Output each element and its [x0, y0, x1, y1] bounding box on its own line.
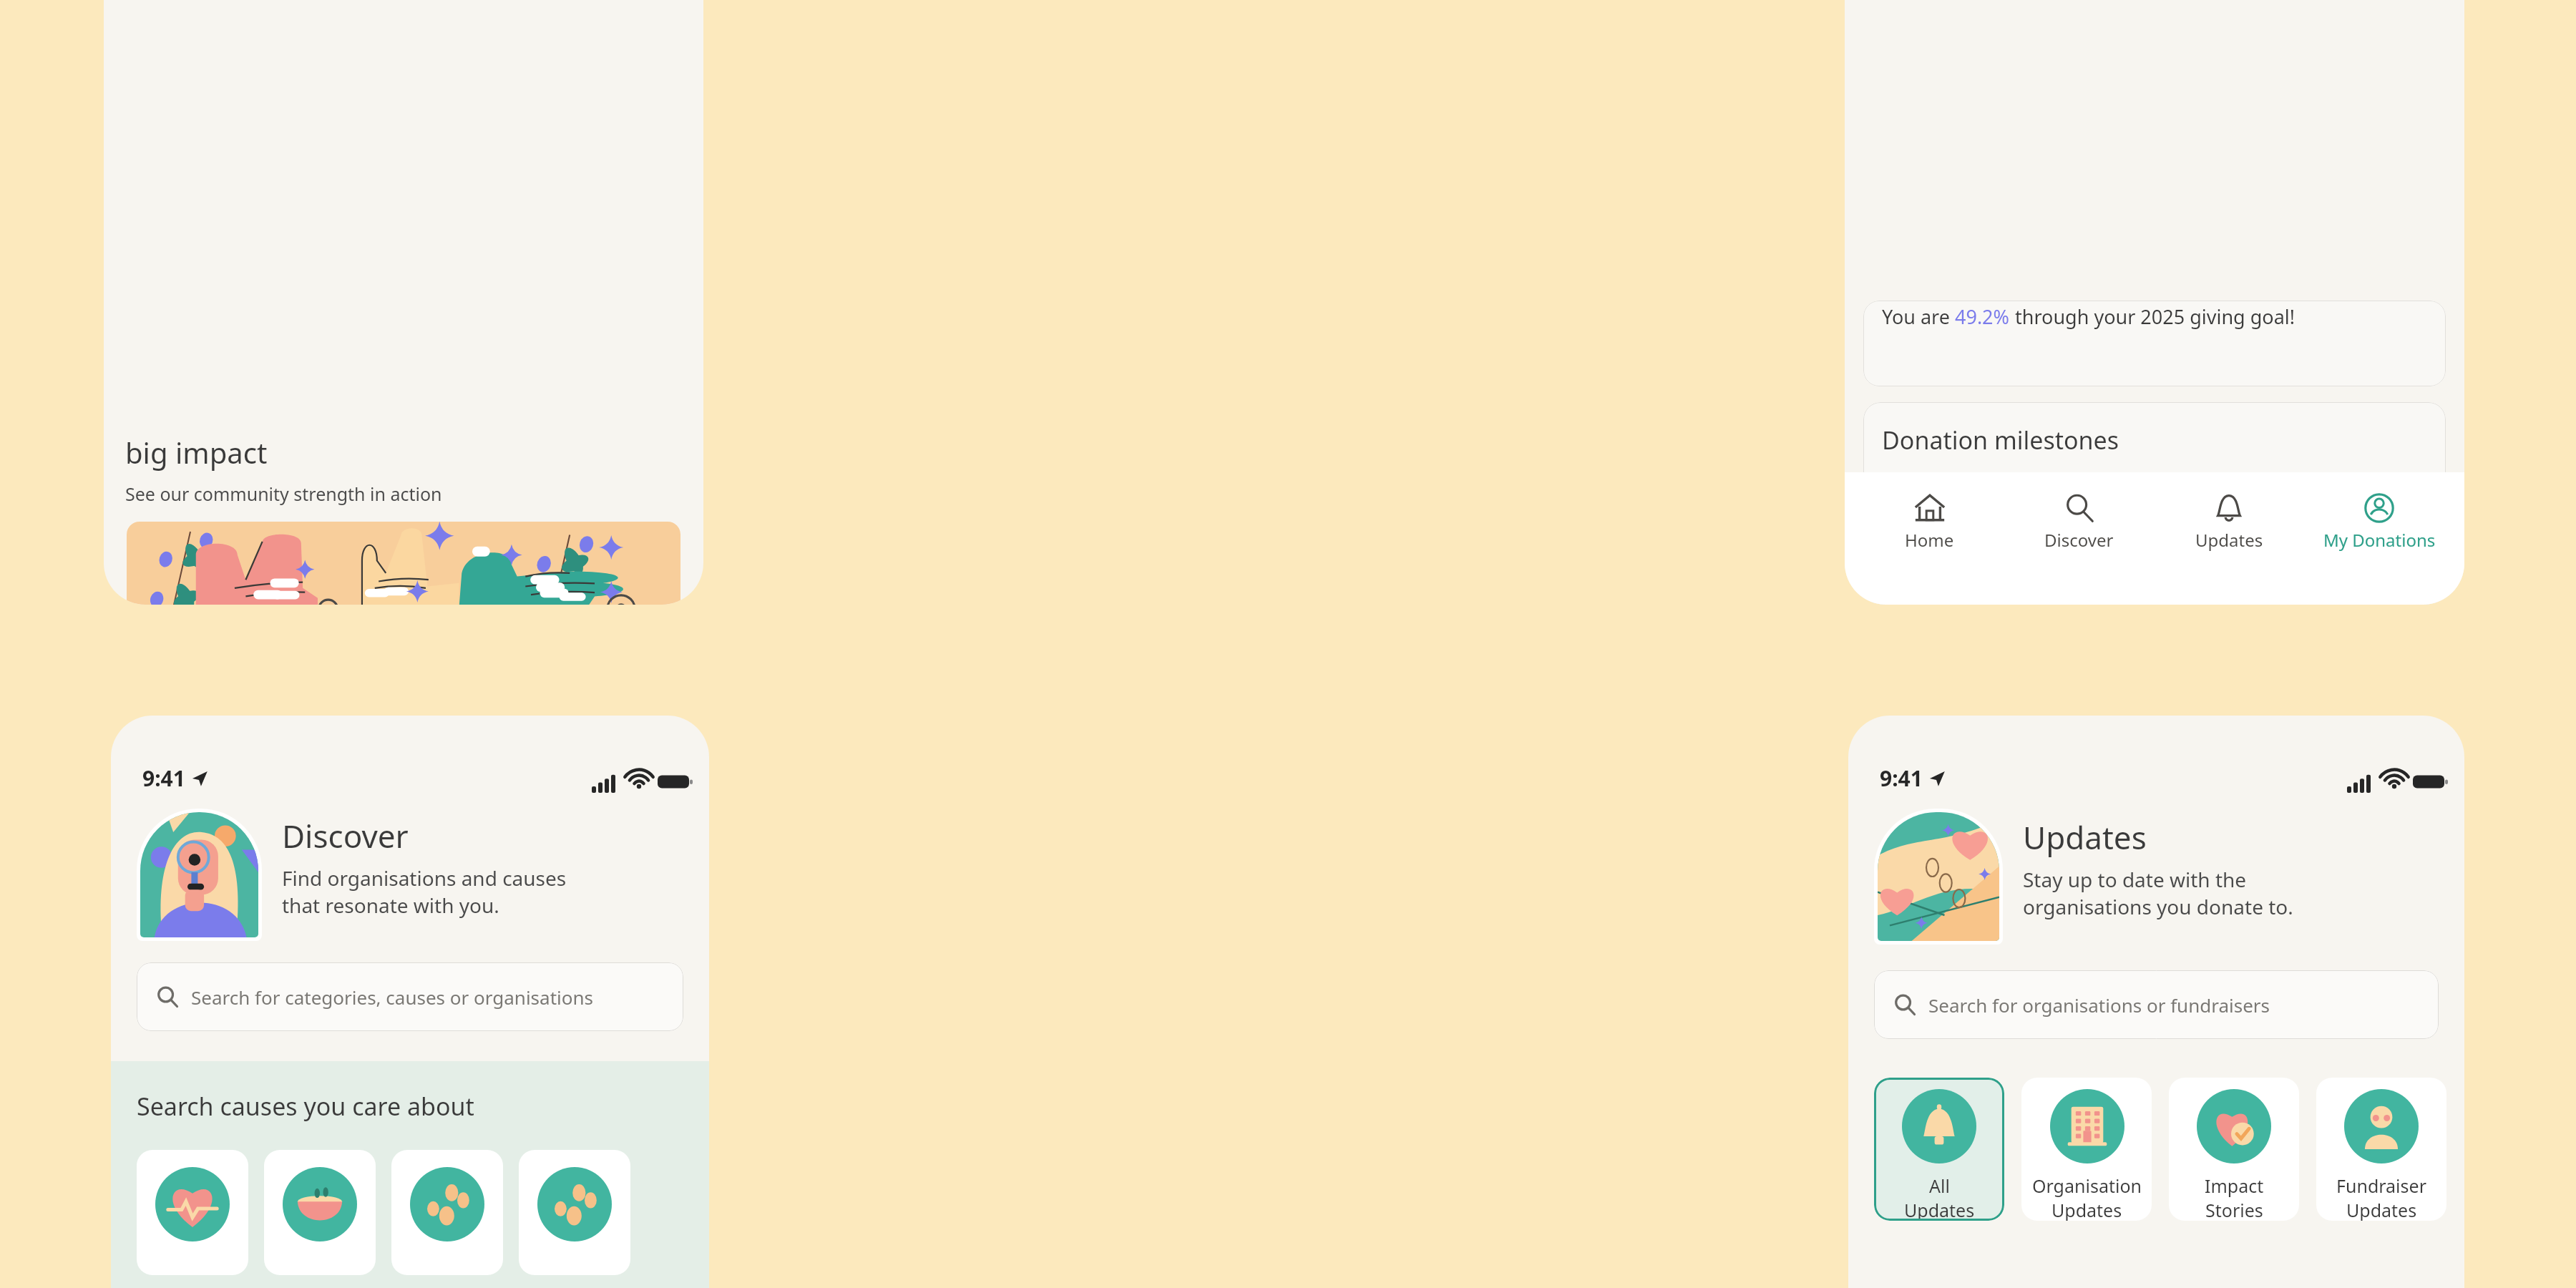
staticText: See our community strength in action: [125, 482, 442, 506]
staticText: Search causes you care about: [137, 1090, 474, 1123]
staticText: Donation milestones: [1882, 424, 2119, 457]
button[interactable]: Organisation: [2021, 1078, 2152, 1221]
staticText: My Donations: [2323, 528, 2436, 552]
staticText: 49.2%: [1955, 303, 2010, 330]
other: My Donations: [2362, 491, 2396, 525]
button[interactable]: Fundraiser: [2316, 1078, 2446, 1221]
staticText: Updates: [2023, 816, 2147, 859]
staticText: through your 2025 giving goal!: [2010, 303, 2296, 330]
staticText: organisations you donate to.: [2023, 893, 2293, 920]
staticText: Stories: [2205, 1198, 2263, 1221]
button[interactable]: Search for organisations or fundraisers: [1874, 970, 2439, 1039]
staticText: Organisation: [2032, 1174, 2142, 1198]
staticText: Updates: [2195, 528, 2263, 552]
staticText: Search for organisations or fundraisers: [1928, 992, 2270, 1018]
button[interactable]: Search for categories, causes or organis…: [137, 962, 683, 1031]
staticText: 9:41: [142, 763, 185, 793]
button[interactable]: [137, 1150, 248, 1275]
other: Updates: [2212, 491, 2246, 525]
staticText: big impact: [125, 433, 268, 472]
staticText: Impact: [2205, 1174, 2264, 1198]
button[interactable]: Discover: [2004, 487, 2154, 556]
staticText: Home: [1905, 528, 1954, 552]
staticText: Updates: [1904, 1198, 1975, 1221]
staticText: Find organisations and causes: [282, 864, 567, 892]
button[interactable]: [519, 1150, 630, 1275]
staticText: Updates: [2051, 1198, 2122, 1221]
button[interactable]: [264, 1150, 376, 1275]
staticText: 9:41: [1880, 763, 1923, 793]
button[interactable]: All: [1874, 1078, 2004, 1221]
other: Discover: [2062, 491, 2097, 525]
staticText: Fundraiser: [2336, 1174, 2426, 1198]
button[interactable]: Updates: [2154, 487, 2304, 556]
button[interactable]: My Donations: [2304, 487, 2454, 556]
staticText: Discover: [2044, 528, 2114, 552]
staticText: Search for categories, causes or organis…: [191, 985, 593, 1010]
staticText: Stay up to date with the: [2023, 866, 2247, 893]
staticText: You are: [1882, 303, 1955, 330]
staticText: Updates: [2346, 1198, 2417, 1221]
staticText: Discover: [282, 814, 409, 857]
button[interactable]: Home: [1855, 487, 2004, 556]
other: Home: [1913, 491, 1947, 525]
staticText: All: [1929, 1174, 1950, 1198]
staticText: that resonate with you.: [282, 892, 499, 919]
button[interactable]: [391, 1150, 503, 1275]
button[interactable]: Impact: [2169, 1078, 2299, 1221]
